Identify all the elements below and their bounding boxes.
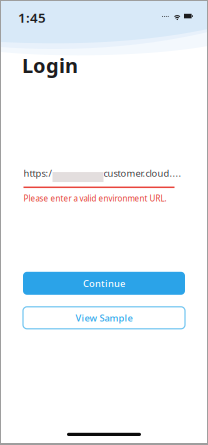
staticText: https:/ bbox=[23, 167, 51, 179]
staticText: View Sample bbox=[75, 312, 132, 324]
staticText: 1:45 bbox=[18, 9, 46, 26]
staticText: Login bbox=[22, 52, 78, 79]
staticText: customer.cloud.... bbox=[103, 167, 181, 179]
staticText: Please enter a valid environment URL. bbox=[23, 193, 166, 204]
staticText: Continue bbox=[83, 277, 125, 289]
button[interactable]: Continue bbox=[23, 272, 185, 295]
button[interactable]: View Sample bbox=[23, 307, 185, 329]
